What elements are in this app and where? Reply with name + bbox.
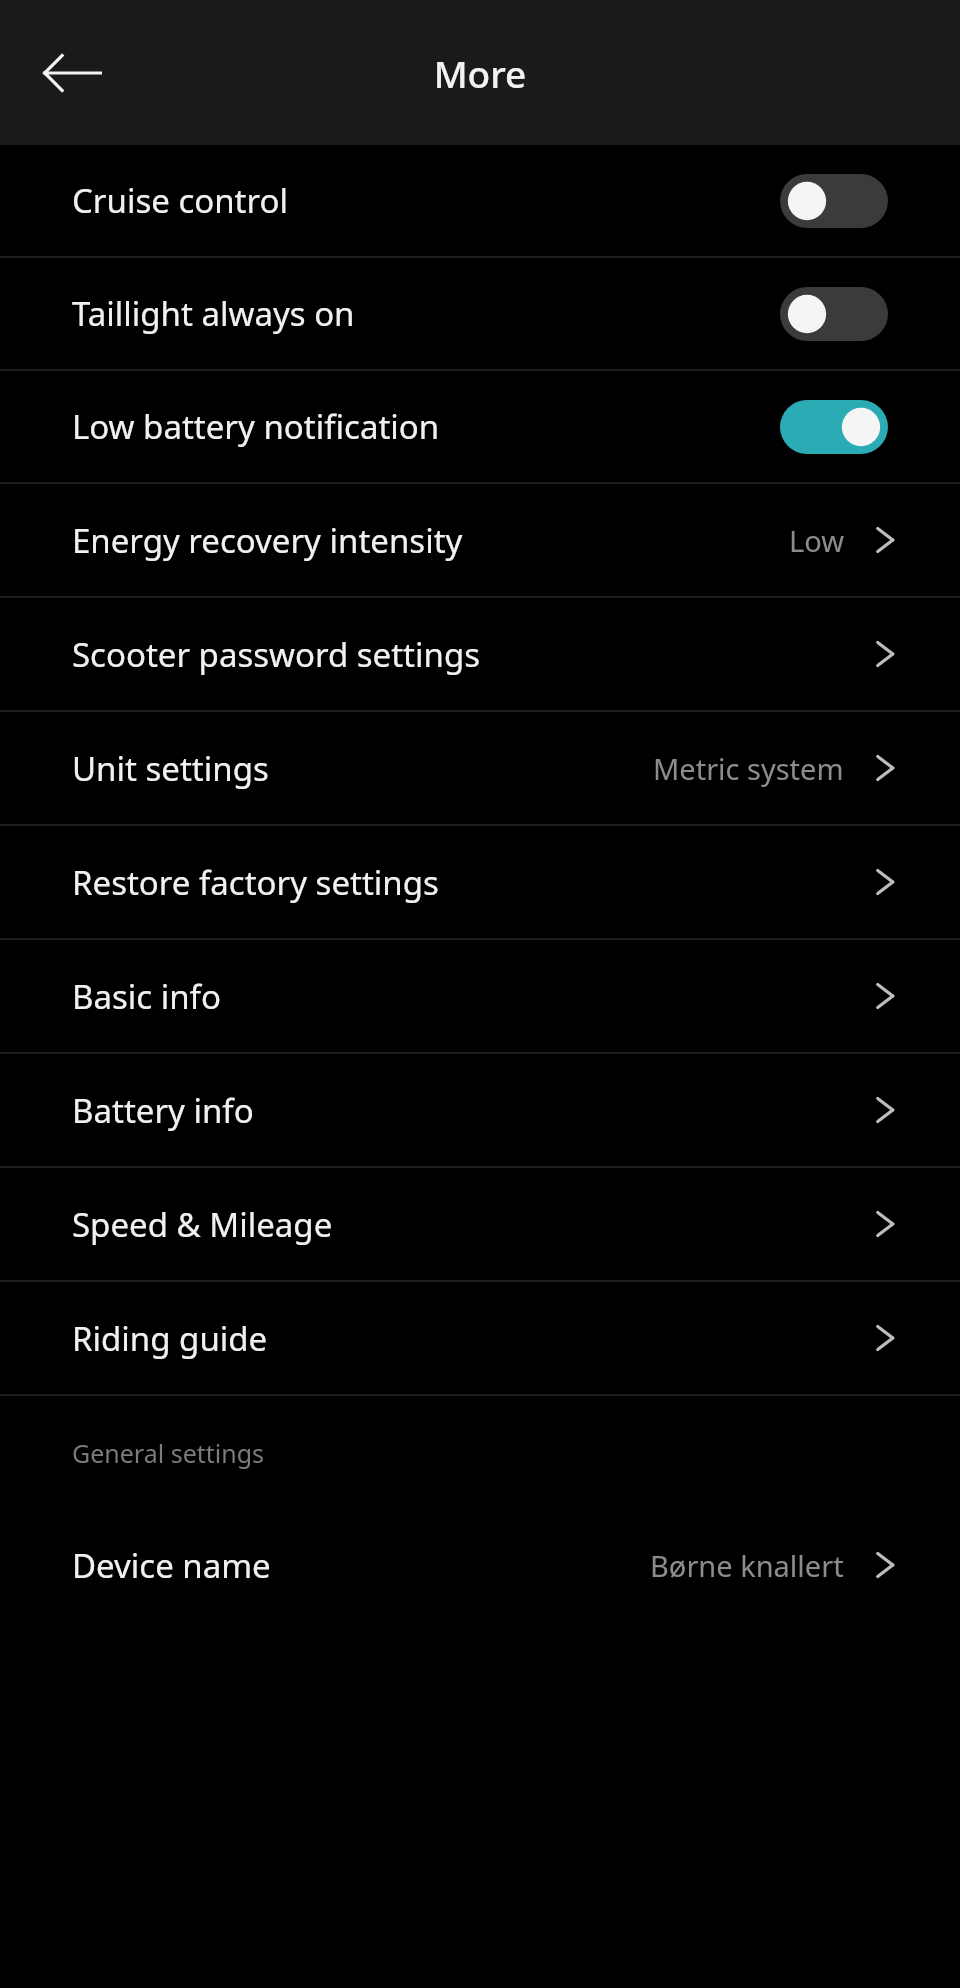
staticText: Metric system	[653, 749, 844, 788]
staticText: Battery info	[72, 1088, 254, 1133]
staticText: Speed & Mileage	[72, 1202, 333, 1247]
staticText: Low	[789, 521, 844, 560]
button[interactable]: Off	[780, 287, 888, 341]
staticText: Low battery notification	[72, 404, 440, 449]
staticText: Cruise control	[72, 178, 288, 223]
button[interactable]: Speed & Mileage	[0, 1168, 960, 1280]
button[interactable]: On	[780, 400, 888, 454]
button[interactable]: Off	[780, 174, 888, 228]
staticText: Unit settings	[72, 746, 269, 791]
staticText: Taillight always on	[72, 291, 355, 336]
staticText: Børne knallert	[650, 1546, 844, 1585]
staticText: Riding guide	[72, 1316, 268, 1361]
button[interactable]: Unit settings	[0, 712, 960, 824]
button[interactable]: Taillight always on	[0, 258, 960, 369]
button[interactable]: Riding guide	[0, 1282, 960, 1394]
staticText: Basic info	[72, 974, 221, 1019]
button[interactable]: Cruise control	[0, 145, 960, 256]
button[interactable]: Scooter password settings	[0, 598, 960, 710]
staticText: More	[0, 48, 960, 98]
button[interactable]: Low battery notification	[0, 371, 960, 482]
button[interactable]: Energy recovery intensity	[0, 484, 960, 596]
staticText: Device name	[72, 1543, 271, 1588]
staticText: Restore factory settings	[72, 860, 439, 905]
button[interactable]: Back	[28, 29, 116, 117]
staticText: Energy recovery intensity	[72, 518, 463, 563]
button[interactable]: Battery info	[0, 1054, 960, 1166]
button[interactable]: Restore factory settings	[0, 826, 960, 938]
button[interactable]: Basic info	[0, 940, 960, 1052]
button[interactable]: Device name	[0, 1509, 960, 1621]
staticText: General settings	[72, 1436, 265, 1470]
staticText: Scooter password settings	[72, 632, 481, 677]
